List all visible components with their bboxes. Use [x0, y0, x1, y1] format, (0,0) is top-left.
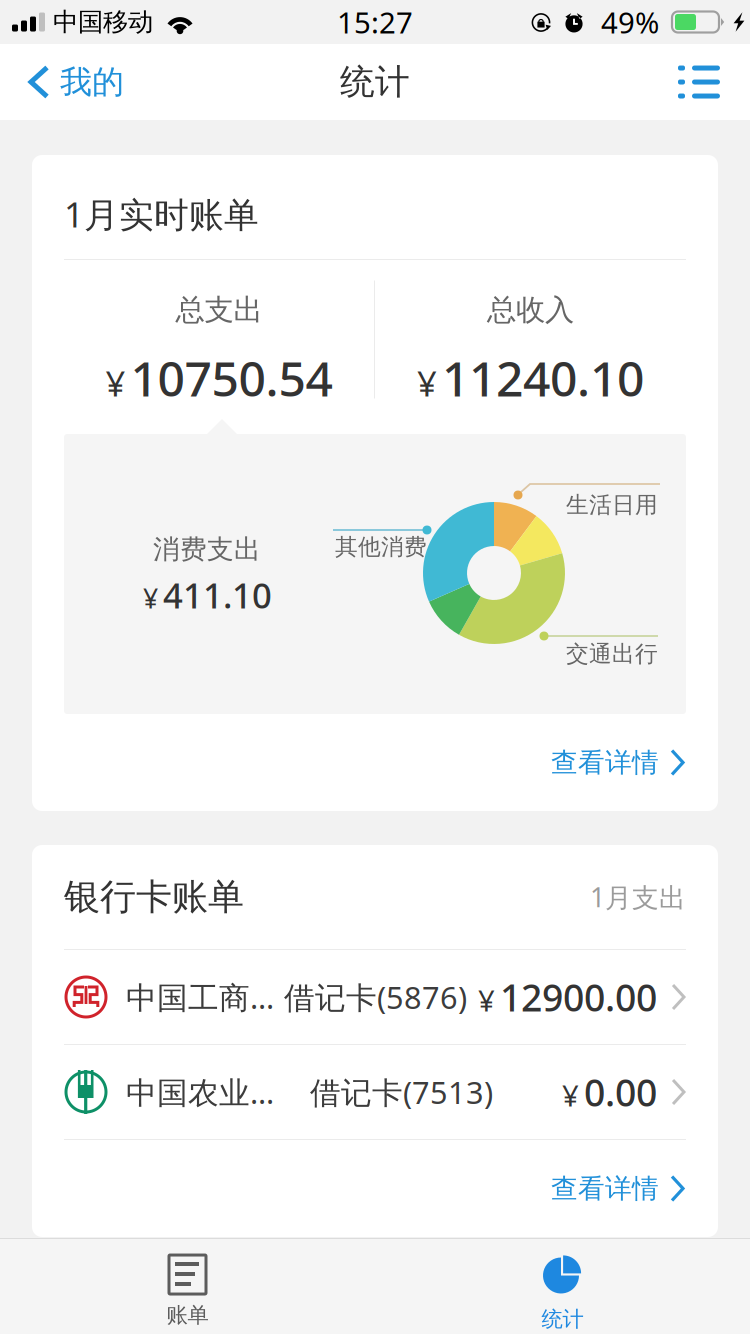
staticText: 15:27 — [337, 2, 413, 41]
staticText: 10750.54 — [130, 346, 332, 410]
button[interactable]: 查看详情 — [32, 1140, 718, 1237]
staticText: 中国农业... — [126, 1072, 274, 1112]
staticText: ¥ — [105, 360, 125, 406]
staticText: 中国工商... — [126, 977, 274, 1017]
button[interactable]: 中国工商... — [64, 950, 686, 1044]
staticText: ¥ — [478, 981, 495, 1020]
staticText: 11240.10 — [442, 346, 644, 410]
button[interactable]: 统计 — [375, 1239, 750, 1334]
staticText: 49% — [601, 2, 659, 41]
staticText: 1月支出 — [590, 879, 686, 915]
staticText: 12900.00 — [500, 972, 657, 1022]
staticText: 统计 — [541, 1306, 583, 1332]
staticText: 账单 — [166, 1302, 208, 1328]
staticText: 我的 — [60, 62, 124, 102]
staticText: 411.10 — [163, 572, 272, 618]
button[interactable]: List — [658, 44, 750, 120]
staticText: 1月实时账单 — [64, 191, 259, 237]
staticText: 借记卡(7513) — [310, 1072, 493, 1112]
staticText: 总收入 — [487, 292, 574, 328]
staticText: 查看详情 — [551, 1172, 659, 1205]
staticText: ¥ — [143, 580, 158, 616]
staticText: 消费支出 — [153, 533, 261, 566]
staticText: 借记卡(5876) — [284, 977, 467, 1017]
staticText: 统计 — [340, 61, 410, 103]
staticText: 其他消费 — [335, 533, 427, 561]
staticText: 中国移动 — [53, 6, 153, 37]
button[interactable]: 中国农业... — [64, 1045, 686, 1139]
staticText: ¥ — [562, 1076, 579, 1115]
button[interactable]: 查看详情 — [32, 714, 718, 811]
button[interactable]: 我的 — [0, 44, 144, 120]
staticText: 生活日用 — [566, 491, 658, 519]
staticText: ¥ — [417, 360, 437, 406]
button[interactable]: 账单 — [0, 1239, 375, 1334]
staticText: 交通出行 — [566, 640, 658, 668]
staticText: 总支出 — [175, 292, 262, 328]
staticText: 查看详情 — [551, 746, 659, 779]
staticText: 0.00 — [584, 1067, 657, 1117]
staticText: 银行卡账单 — [64, 875, 244, 919]
